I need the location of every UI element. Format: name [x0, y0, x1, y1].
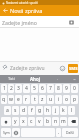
button[interactable]: h — [44, 106, 51, 115]
staticText: Zadejte zprávu — [10, 65, 45, 72]
button[interactable]: 0 — [71, 84, 78, 93]
button[interactable]: e — [15, 95, 22, 104]
staticText: u — [49, 96, 53, 103]
button[interactable]: 7 — [47, 84, 54, 93]
staticText: 6 — [41, 85, 44, 92]
button[interactable]: 8 — [55, 84, 62, 93]
button[interactable]: y — [12, 117, 19, 126]
button[interactable]: z — [39, 95, 46, 104]
staticText: Další — [66, 130, 74, 135]
button[interactable]: a — [4, 106, 11, 115]
button[interactable]: k — [60, 106, 67, 115]
staticText: . — [58, 129, 60, 136]
button[interactable]: g — [36, 106, 43, 115]
button[interactable]: Ahoj — [23, 75, 46, 83]
staticText: n — [54, 118, 58, 125]
staticText: Sym — [3, 130, 10, 135]
staticText: e — [17, 96, 20, 103]
staticText: r — [25, 96, 28, 103]
staticText: 7 — [49, 85, 52, 92]
button[interactable]: 4 — [23, 84, 30, 93]
button[interactable]: 6 — [39, 84, 46, 93]
button[interactable]: SMS — [68, 64, 78, 73]
staticText: t — [34, 96, 36, 103]
button[interactable]: 1 — [1, 84, 7, 93]
staticText: 0 — [73, 85, 76, 92]
staticText: x — [22, 118, 25, 125]
staticText: d — [22, 107, 26, 114]
staticText: Nastaveni uzivatel: spustit — [6, 1, 38, 5]
button[interactable]: p — [71, 95, 78, 104]
button[interactable]: r — [23, 95, 30, 104]
staticText: 9 — [65, 85, 68, 92]
staticText: j — [55, 107, 57, 114]
button[interactable]: n — [52, 117, 59, 126]
button[interactable]: l — [68, 106, 75, 115]
staticText: SMS — [69, 66, 78, 72]
staticText: 5 — [33, 85, 36, 92]
button[interactable]: Sym — [1, 128, 11, 137]
button[interactable]: 5 — [31, 84, 38, 93]
button[interactable]: Add recipient — [67, 18, 76, 27]
staticText: f — [31, 107, 33, 114]
staticText: k — [62, 107, 65, 114]
staticText: Nová zpráva — [10, 7, 43, 15]
button[interactable]: i — [55, 95, 62, 104]
button[interactable]: Attach file — [0, 63, 10, 73]
button[interactable]: m — [60, 117, 67, 126]
staticText: 4 — [25, 85, 28, 92]
button[interactable]: Tati — [0, 75, 23, 83]
button[interactable]: v — [36, 117, 43, 126]
button[interactable]: 2 — [8, 84, 14, 93]
button[interactable]: More suggestions — [69, 75, 79, 83]
staticText: 1 — [3, 85, 6, 92]
button[interactable]: 3 — [15, 84, 22, 93]
staticText: c — [30, 118, 33, 125]
button[interactable] — [12, 128, 20, 137]
button[interactable]: b — [44, 117, 51, 126]
button[interactable]: 9 — [63, 84, 70, 93]
button[interactable] — [1, 117, 11, 126]
staticText: Tati — [8, 76, 15, 82]
button[interactable] — [68, 117, 78, 126]
staticText: w — [9, 96, 13, 103]
staticText: 2 — [10, 85, 13, 92]
staticText: Zadejte jméno — [2, 19, 37, 26]
staticText: p — [73, 96, 77, 103]
staticText: y — [14, 118, 17, 125]
staticText: v — [38, 118, 41, 125]
staticText: 3 — [17, 85, 20, 92]
button[interactable]: o — [63, 95, 70, 104]
button[interactable]: s — [12, 106, 19, 115]
button[interactable]: x — [20, 117, 27, 126]
staticText: o — [65, 96, 69, 103]
button[interactable]: w — [8, 95, 14, 104]
staticText: b — [46, 118, 50, 125]
button[interactable]: Emoji — [58, 64, 67, 73]
button[interactable]: Další — [62, 128, 78, 137]
staticText: h — [46, 107, 50, 114]
button[interactable]: u — [47, 95, 54, 104]
staticText: s — [14, 107, 17, 114]
staticText: l — [71, 107, 73, 114]
button[interactable]: f — [28, 106, 35, 115]
button[interactable]: q — [1, 95, 7, 104]
staticText: 8 — [57, 85, 60, 92]
button[interactable]: j — [52, 106, 59, 115]
staticText: g — [38, 107, 42, 114]
button[interactable]: Back — [0, 5, 10, 16]
staticText: Ahoj — [30, 76, 40, 82]
staticText: a — [6, 107, 9, 114]
button[interactable]: t — [31, 95, 38, 104]
staticText: m — [61, 118, 66, 125]
staticText: q — [2, 96, 6, 103]
button[interactable]: c — [28, 117, 35, 126]
button[interactable]: d — [20, 106, 27, 115]
staticText: z — [41, 96, 44, 103]
button[interactable]: . — [56, 128, 61, 137]
staticText: i — [58, 96, 60, 103]
